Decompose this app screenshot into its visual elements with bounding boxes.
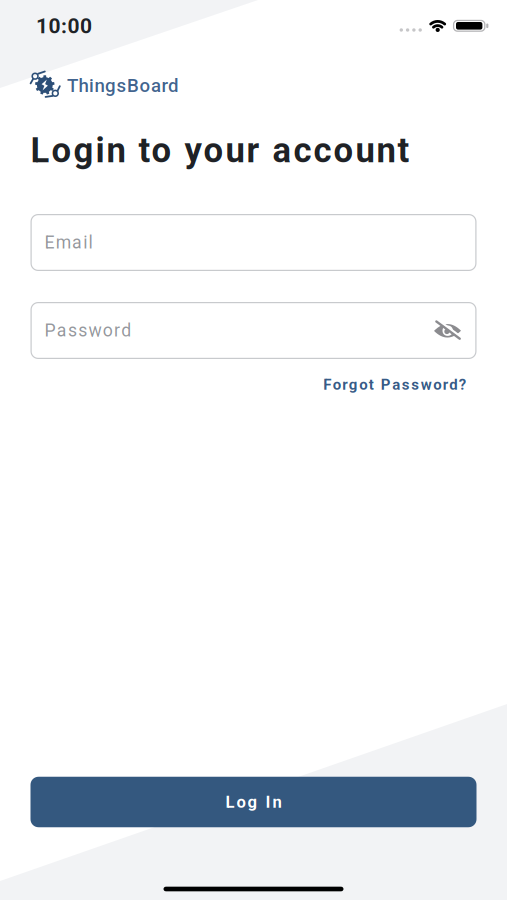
button[interactable]: Forgot Password? <box>323 376 466 393</box>
button[interactable]: Log In <box>30 777 476 827</box>
staticText: Login to your account <box>30 130 409 171</box>
staticText: Forgot Password? <box>323 376 466 393</box>
button[interactable]: Show password <box>432 316 462 344</box>
button[interactable]: Email <box>30 214 476 271</box>
staticText: ThingsBoard <box>67 75 179 96</box>
staticText: 10:00 <box>36 14 92 38</box>
staticText: Password <box>44 320 131 341</box>
staticText: Email <box>44 232 92 253</box>
button[interactable]: Password <box>30 302 476 359</box>
staticText: Log In <box>225 792 281 812</box>
